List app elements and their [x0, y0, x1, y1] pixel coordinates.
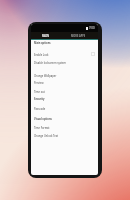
button[interactable]: MAIN — [31, 32, 60, 39]
button[interactable]: MORE APPS — [60, 32, 96, 39]
staticText: Passcode — [34, 107, 95, 110]
button[interactable]: Change Wallpaper — [31, 70, 98, 80]
button[interactable]: Change Unlock Text — [31, 132, 98, 140]
staticText: Time Format — [34, 126, 95, 129]
staticText: 7:00 — [89, 26, 95, 30]
staticText: Visual options — [34, 117, 95, 120]
staticText: Time out — [34, 90, 95, 93]
button[interactable]: Enable Lock — [31, 48, 98, 60]
staticText: MAIN — [42, 34, 50, 37]
button[interactable]: Visual options — [31, 115, 98, 124]
button[interactable]: Disable lockscreen system — [31, 60, 98, 70]
button[interactable]: Security — [31, 96, 98, 104]
staticText: MORE APPS — [71, 34, 86, 37]
button[interactable]: Time out — [31, 88, 98, 96]
button[interactable]: Preview — [31, 80, 98, 88]
staticText: Change Wallpaper — [34, 74, 95, 77]
button[interactable]: Main options — [31, 40, 98, 47]
staticText: Disable lockscreen system — [34, 61, 95, 64]
staticText: Main options — [34, 41, 95, 44]
button[interactable]: Time Format — [31, 124, 98, 132]
staticText: Security — [34, 97, 95, 100]
staticText: Preview — [34, 81, 95, 84]
button[interactable]: Passcode — [31, 104, 98, 114]
staticText: Enable Lock — [34, 53, 91, 56]
staticText: Change Unlock Text — [34, 134, 95, 137]
